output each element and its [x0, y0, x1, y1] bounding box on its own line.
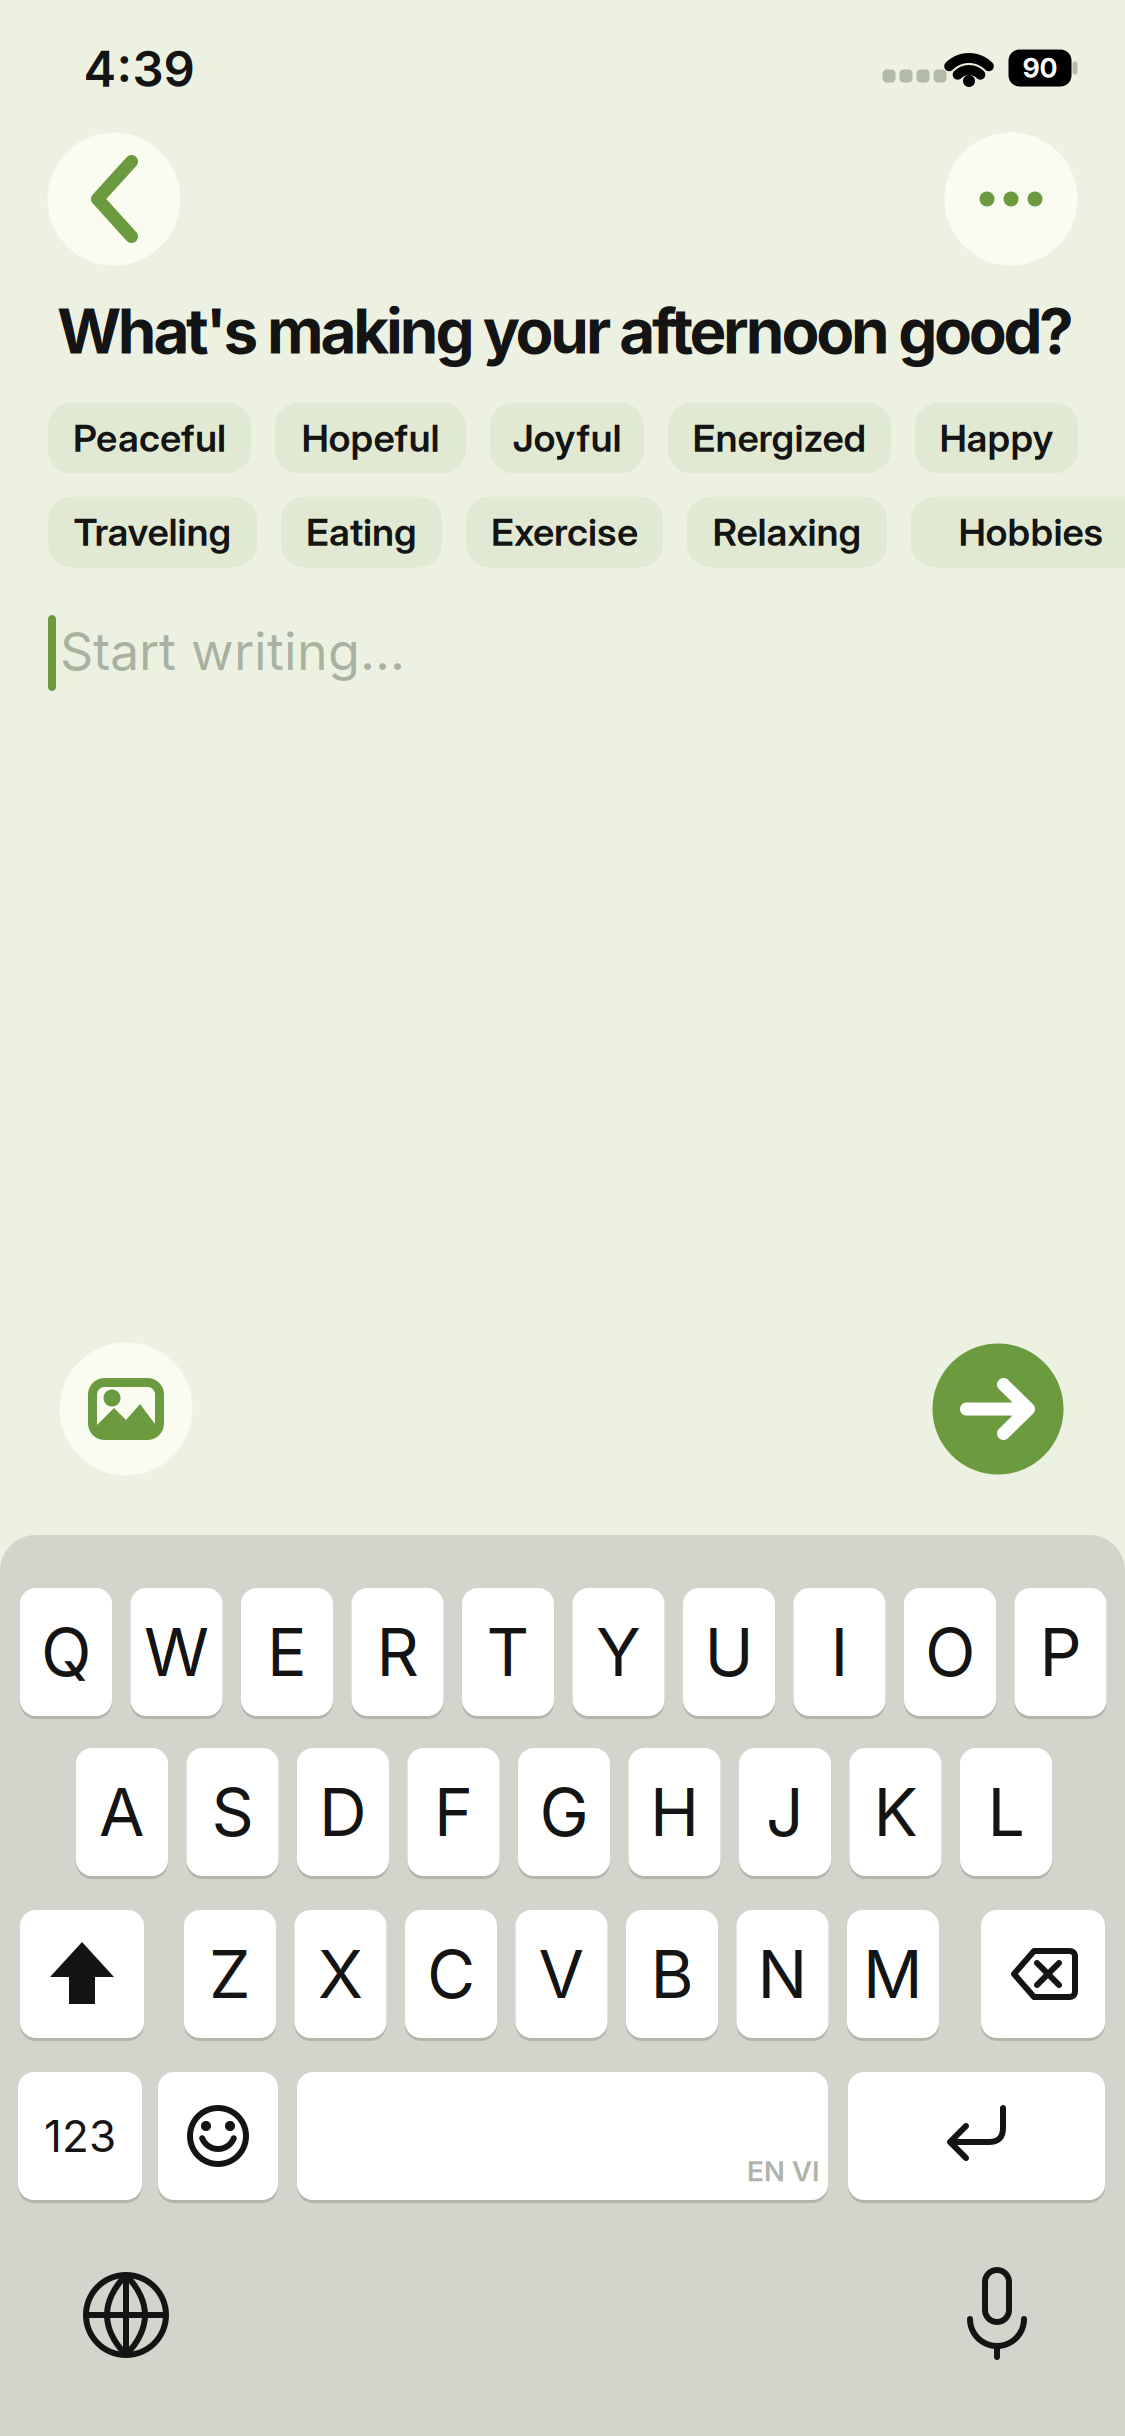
button[interactable]: S — [0, 0, 1125, 2436]
button[interactable] — [932, 1343, 1063, 1474]
button[interactable]: C — [0, 0, 1125, 2436]
button[interactable] — [0, 0, 1125, 2436]
staticText: S — [211, 1772, 253, 1852]
button[interactable] — [0, 0, 1125, 2436]
staticText: P — [1039, 1612, 1081, 1692]
button[interactable] — [59, 1342, 192, 1475]
staticText: Energized — [692, 415, 866, 461]
button[interactable]: U — [0, 0, 1125, 2436]
staticText: B — [650, 1934, 693, 2014]
button[interactable]: T — [0, 0, 1125, 2436]
button[interactable] — [0, 0, 1125, 2436]
staticText: Y — [596, 1612, 641, 1692]
button[interactable]: M — [0, 0, 1125, 2436]
button[interactable]: Energized — [668, 402, 891, 473]
staticText: T — [486, 1612, 529, 1692]
button[interactable]: R — [0, 0, 1125, 2436]
staticText: Exercise — [491, 509, 638, 555]
staticText: EN VI — [747, 2154, 819, 2188]
staticText: C — [427, 1934, 475, 2014]
button[interactable] — [944, 132, 1077, 265]
button[interactable]: Q — [0, 0, 1125, 2436]
staticText: Traveling — [73, 509, 231, 555]
button[interactable]: Relaxing — [687, 496, 887, 567]
staticText: U — [704, 1612, 753, 1692]
button[interactable]: O — [0, 0, 1125, 2436]
button[interactable]: Happy — [915, 402, 1078, 473]
staticText: J — [766, 1772, 804, 1852]
staticText: 4:39 — [83, 39, 194, 99]
staticText: G — [539, 1772, 588, 1852]
button[interactable] — [0, 0, 1125, 2436]
staticText: Q — [41, 1612, 91, 1692]
button[interactable]: J — [0, 0, 1125, 2436]
staticText: A — [99, 1772, 145, 1852]
button[interactable]: L — [0, 0, 1125, 2436]
button[interactable]: Eating — [281, 496, 442, 567]
button[interactable]: Z — [0, 0, 1125, 2436]
staticText: 123 — [44, 2109, 116, 2163]
button[interactable]: V — [0, 0, 1125, 2436]
staticText: 90 — [1022, 52, 1057, 84]
staticText: Happy — [939, 415, 1053, 461]
staticText: M — [863, 1934, 923, 2014]
staticText: Peaceful — [73, 415, 226, 461]
staticText: K — [873, 1772, 917, 1852]
button[interactable]: Hopeful — [275, 402, 466, 473]
button[interactable]: 123 — [0, 0, 1125, 2436]
button[interactable]: W — [0, 0, 1125, 2436]
staticText: Hopeful — [301, 415, 439, 461]
button[interactable] — [84, 2273, 168, 2357]
button[interactable]: Exercise — [466, 496, 663, 567]
button[interactable]: Hobbies — [911, 496, 1125, 567]
staticText: R — [376, 1612, 418, 1692]
button[interactable]: E — [0, 0, 1125, 2436]
button[interactable]: P — [0, 0, 1125, 2436]
button[interactable]: X — [0, 0, 1125, 2436]
staticText: I — [830, 1612, 848, 1692]
staticText: L — [987, 1772, 1024, 1852]
button[interactable]: G — [0, 0, 1125, 2436]
staticText: H — [650, 1772, 699, 1852]
staticText: F — [434, 1772, 473, 1852]
button[interactable]: F — [0, 0, 1125, 2436]
staticText: V — [538, 1934, 584, 2014]
button[interactable] — [952, 2267, 1042, 2357]
staticText: D — [319, 1772, 367, 1852]
button[interactable] — [47, 132, 180, 265]
button[interactable]: D — [0, 0, 1125, 2436]
staticText: Start writing... — [60, 619, 405, 682]
staticText: O — [925, 1612, 975, 1692]
staticText: Relaxing — [712, 509, 861, 555]
staticText: E — [267, 1612, 307, 1692]
staticText: Hobbies — [958, 509, 1103, 555]
staticText: X — [318, 1934, 363, 2014]
staticText: N — [757, 1934, 807, 2014]
button[interactable]: H — [0, 0, 1125, 2436]
staticText: Joyful — [512, 415, 621, 461]
staticText: What's making your afternoon good? — [57, 293, 1074, 368]
button[interactable]: Joyful — [490, 402, 644, 473]
button[interactable]: A — [0, 0, 1125, 2436]
staticText: Eating — [306, 509, 417, 555]
button[interactable]: K — [0, 0, 1125, 2436]
button[interactable]: Traveling — [48, 496, 257, 567]
button[interactable]: I — [0, 0, 1125, 2436]
button[interactable]: Y — [0, 0, 1125, 2436]
button[interactable] — [0, 0, 1125, 2436]
button[interactable]: B — [0, 0, 1125, 2436]
staticText: W — [144, 1612, 209, 1692]
button[interactable]: N — [0, 0, 1125, 2436]
staticText: Z — [209, 1934, 251, 2014]
button[interactable]: Peaceful — [48, 402, 251, 473]
